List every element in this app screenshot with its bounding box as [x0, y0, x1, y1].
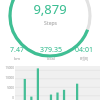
button[interactable]: Weekly activity chart	[0, 66, 100, 100]
button[interactable]: 04:01	[67, 44, 100, 62]
button[interactable]: 7.47	[0, 44, 34, 62]
staticText: kcal	[47, 56, 55, 61]
staticText: 7.47	[10, 45, 24, 55]
staticText: 10000	[5, 76, 14, 80]
staticText: 379.35	[40, 45, 62, 55]
staticText: 5000	[7, 86, 14, 90]
staticText: 9,879	[33, 0, 67, 18]
staticText: km	[14, 56, 20, 61]
staticText: Steps	[44, 20, 57, 27]
staticText: 0	[12, 96, 14, 100]
staticText: 时间	[80, 56, 88, 61]
button[interactable]: 379.35	[34, 44, 67, 62]
staticText: 04:01	[75, 45, 93, 55]
button[interactable]: Steps progress ring	[0, 0, 100, 42]
staticText: 15000	[5, 66, 14, 70]
